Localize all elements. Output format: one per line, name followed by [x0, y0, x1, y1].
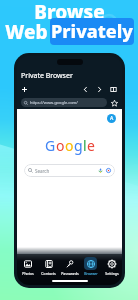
staticText: Passwords — [61, 271, 79, 276]
button[interactable]: Passwords — [59, 257, 80, 276]
staticText: Settings — [105, 271, 119, 276]
staticText: g — [74, 136, 83, 155]
staticText: Web — [5, 19, 48, 45]
button[interactable]: Photos — [17, 257, 38, 276]
staticText: A — [110, 115, 114, 122]
button[interactable]: Search — [24, 164, 115, 177]
staticText: Contacts — [41, 271, 56, 276]
staticText: Search — [35, 168, 50, 174]
staticText: Browser — [84, 271, 98, 276]
button[interactable]: Browser — [80, 257, 101, 276]
button[interactable]: Contacts — [38, 257, 59, 276]
staticText: Browse — [34, 0, 105, 25]
staticText: o — [65, 136, 74, 155]
staticText: o — [56, 136, 65, 155]
staticText: Private Browser — [21, 71, 73, 81]
staticText: l — [83, 136, 87, 155]
button[interactable]: Settings — [101, 257, 122, 276]
staticText: Photos — [22, 271, 34, 276]
button[interactable]: Bookmarks — [109, 85, 118, 94]
button[interactable]: Back — [81, 85, 90, 94]
button[interactable]: https://www.google.com/ — [21, 98, 107, 107]
staticText: https://www.google.com/ — [30, 100, 78, 105]
button[interactable]: Bookmark — [110, 99, 118, 107]
button[interactable]: Forward — [95, 85, 104, 94]
button[interactable]: New tab — [21, 86, 28, 93]
staticText: Privately — [51, 19, 133, 44]
button[interactable]: Account — [107, 114, 116, 123]
staticText: G — [45, 136, 56, 155]
staticText: e — [87, 136, 95, 155]
